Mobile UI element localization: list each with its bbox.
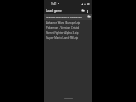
button[interactable]: More options <box>85 9 89 13</box>
staticText: Advance Wars (Europe).zip <box>46 21 81 25</box>
staticText: Load game <box>46 9 62 13</box>
button[interactable]: Download <box>86 14 91 19</box>
button[interactable]: Advance Wars (Europe).zip <box>44 20 92 25</box>
button[interactable]: Pokemon - Version Cristal <box>44 25 92 30</box>
button[interactable]: Street Fighter Alpha 3.zip <box>44 30 92 35</box>
staticText: Street Fighter Alpha 3.zip <box>46 31 79 35</box>
button[interactable]: Manage emulated & Download <box>44 14 92 19</box>
button[interactable]: Cloud sync <box>80 8 85 13</box>
staticText: Super Mario Land (W).zip <box>46 36 79 40</box>
staticText: Pokemon - Version Cristal <box>46 26 80 30</box>
button[interactable]: Super Mario Land (W).zip <box>44 35 92 40</box>
staticText: 9:41 <box>51 2 57 6</box>
staticText: Manage emulated & Download <box>46 15 86 18</box>
